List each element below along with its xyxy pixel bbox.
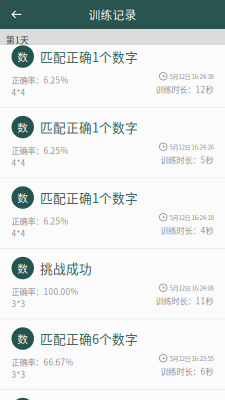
- staticText: 训练时长：6秒: [160, 365, 213, 377]
- staticText: 匹配正确1个数字: [40, 118, 138, 136]
- staticText: 训练时长：5秒: [160, 154, 213, 166]
- staticText: 数: [17, 119, 28, 135]
- staticText: 训练时长：11秒: [155, 295, 213, 307]
- staticText: 正确率：6.25%: [11, 144, 68, 156]
- staticText: 5月12日 16:24:08: [169, 283, 213, 292]
- staticText: 数: [17, 260, 28, 276]
- button[interactable]: 数: [0, 319, 225, 389]
- staticText: 5月12日 16:23:55: [169, 354, 213, 363]
- staticText: 挑战成功: [40, 259, 92, 277]
- staticText: 第1天: [6, 33, 29, 46]
- staticText: 数: [17, 49, 28, 64]
- staticText: 正确率：6.25%: [11, 215, 68, 227]
- staticText: 匹配正确6个数字: [40, 329, 138, 348]
- button[interactable]: 数: [0, 45, 225, 107]
- button[interactable]: 数: [0, 249, 225, 318]
- staticText: 正确率：66.67%: [11, 356, 73, 368]
- button[interactable]: 数: [0, 390, 225, 400]
- staticText: 匹配正确1个数字: [40, 47, 138, 66]
- staticText: 4*4: [11, 86, 25, 98]
- staticText: 匹配正确1个数字: [40, 188, 138, 207]
- staticText: 5月12日 16:24:26: [169, 142, 213, 151]
- staticText: 训练时长：4秒: [160, 224, 213, 236]
- staticText: 数: [17, 190, 28, 205]
- button[interactable]: 数: [0, 108, 225, 177]
- staticText: 正确率：6.25%: [11, 74, 68, 86]
- staticText: 训练记录: [88, 6, 136, 23]
- staticText: 5月12日 16:24:38: [169, 72, 213, 81]
- staticText: 训练时长：12秒: [155, 83, 213, 95]
- staticText: 3*3: [11, 298, 25, 310]
- staticText: 5月12日 16:24:18: [169, 213, 213, 222]
- button[interactable]: 数: [0, 178, 225, 248]
- staticText: 正确率：100.00%: [11, 285, 78, 297]
- button[interactable]: Back: [4, 0, 33, 29]
- staticText: 3*3: [11, 368, 25, 380]
- staticText: 4*4: [11, 227, 25, 239]
- staticText: 4*4: [11, 157, 25, 169]
- staticText: 数: [17, 331, 28, 346]
